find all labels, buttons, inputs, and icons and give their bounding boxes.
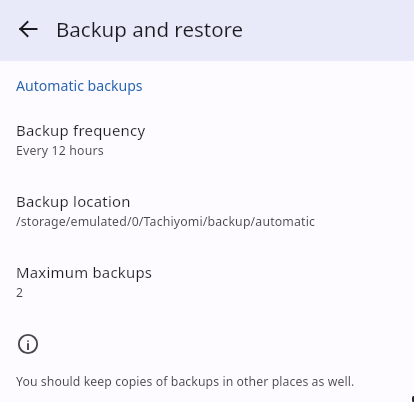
button[interactable]: Maximum backups xyxy=(0,259,414,330)
button[interactable]: Backup frequency xyxy=(0,117,414,188)
staticText: Backup frequency xyxy=(16,120,146,140)
staticText: 2 xyxy=(16,284,24,301)
staticText: You should keep copies of backups in oth… xyxy=(16,373,355,390)
button[interactable]: Backup location xyxy=(0,188,414,259)
staticText: Backup and restore xyxy=(56,15,244,43)
button[interactable]: Navigate up xyxy=(8,9,48,49)
staticText: Maximum backups xyxy=(16,262,153,282)
staticText: Backup location xyxy=(16,191,131,211)
staticText: /storage/emulated/0/Tachiyomi/backup/aut… xyxy=(16,213,316,230)
staticText: Every 12 hours xyxy=(16,142,104,159)
staticText: Automatic backups xyxy=(16,76,143,95)
